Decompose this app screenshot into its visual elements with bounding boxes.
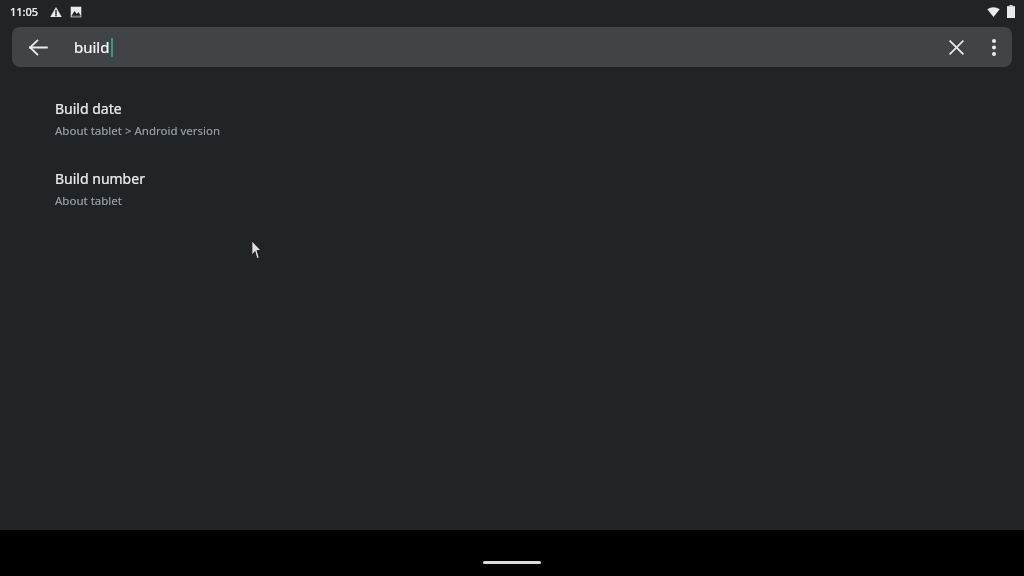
staticText: About tablet — [55, 193, 122, 209]
staticText: Build number — [55, 169, 145, 188]
button[interactable]: Clear search — [936, 27, 976, 67]
button[interactable]: Back — [12, 27, 64, 67]
staticText: build — [74, 37, 110, 57]
button[interactable]: Build number — [0, 167, 1024, 211]
button[interactable]: Build date — [0, 97, 1024, 141]
staticText: About tablet > Android version — [55, 123, 221, 139]
staticText: Build date — [55, 99, 122, 118]
button[interactable]: More options — [976, 27, 1012, 67]
staticText: 11:05 — [10, 4, 39, 19]
